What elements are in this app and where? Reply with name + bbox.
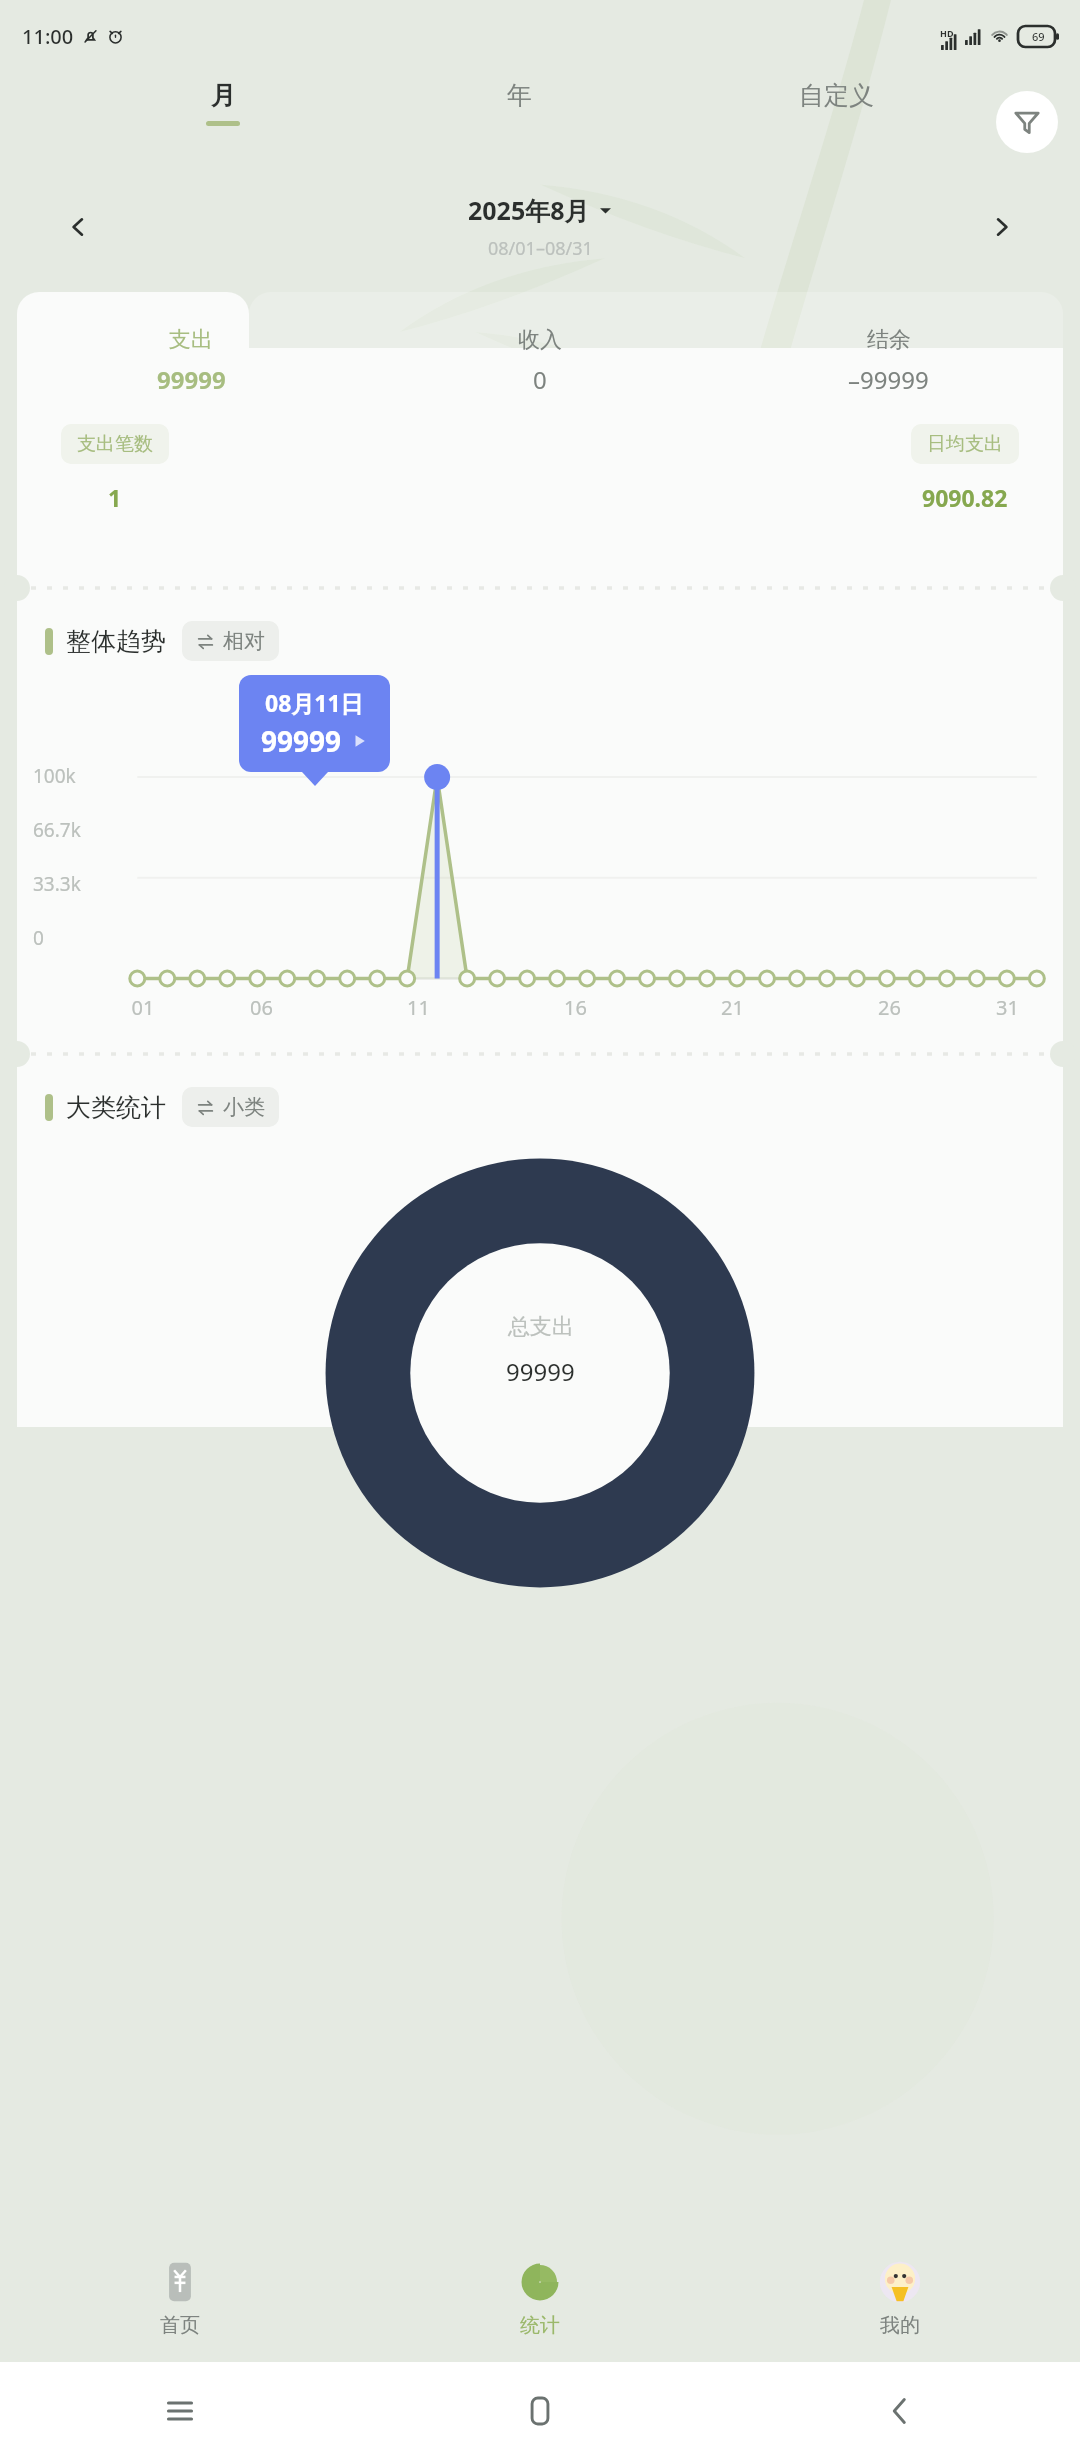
button[interactable]: 收入 <box>365 306 714 416</box>
button[interactable]: Filter <box>996 91 1058 153</box>
button[interactable]: Next <box>974 199 1030 255</box>
staticText: 99999 <box>506 1355 575 1388</box>
button[interactable]: 月 <box>200 72 246 134</box>
button[interactable]: 统计 <box>360 2255 720 2344</box>
staticText: 0 <box>533 363 547 396</box>
button[interactable]: 2025年8月 <box>468 193 612 261</box>
staticText: 大类统计 <box>66 1092 166 1123</box>
button[interactable]: 支出 <box>17 306 365 416</box>
staticText: 99999 <box>157 363 226 396</box>
staticText: 首页 <box>160 2313 200 2338</box>
staticText: 收入 <box>518 326 562 354</box>
button[interactable]: 首页 <box>0 2255 360 2344</box>
staticText: 相对 <box>223 628 265 654</box>
staticText: 结余 <box>867 326 911 354</box>
staticText: 1 <box>108 482 122 513</box>
staticText: 自定义 <box>799 80 874 111</box>
button[interactable]: 结余 <box>714 306 1063 416</box>
button[interactable]: 小类 <box>182 1087 279 1127</box>
staticText: 66.7k <box>33 817 81 843</box>
staticText: 年 <box>507 80 532 111</box>
staticText: HD <box>940 27 954 39</box>
staticText: 支出笔数 <box>77 432 153 456</box>
button[interactable]: Previous <box>50 199 106 255</box>
staticText: 16 <box>497 994 654 1021</box>
staticText: 日均支出 <box>927 432 1003 456</box>
staticText: 0 <box>33 925 44 951</box>
staticText: 支出 <box>169 326 213 354</box>
button[interactable]: 08月11日 <box>261 687 368 760</box>
button[interactable]: 我的 <box>720 2255 1080 2344</box>
staticText: 26 <box>811 994 968 1021</box>
staticText: 69 <box>1032 29 1045 44</box>
button[interactable]: 日均支出 <box>911 424 1019 513</box>
staticText: 31 <box>968 994 1047 1021</box>
staticText: 我的 <box>880 2313 920 2338</box>
button[interactable]: 相对 <box>182 621 279 661</box>
staticText: 统计 <box>520 2313 560 2338</box>
button[interactable]: 支出笔数 <box>61 424 169 513</box>
staticText: 9090.82 <box>922 482 1008 513</box>
staticText: 2025年8月 <box>468 193 590 227</box>
staticText: 11 <box>340 994 497 1021</box>
staticText: 月 <box>211 80 236 111</box>
staticText: 整体趋势 <box>66 626 166 657</box>
staticText: 100k <box>33 763 76 789</box>
button[interactable]: Home <box>360 2393 720 2429</box>
staticText: 08月11日 <box>265 687 364 718</box>
staticText: 总支出 <box>508 1313 574 1341</box>
staticText: 33.3k <box>33 871 81 897</box>
staticText: 11:00 <box>22 23 74 50</box>
staticText: 小类 <box>223 1094 265 1120</box>
button[interactable]: 年 <box>501 72 538 134</box>
staticText: 08/01–08/31 <box>488 236 593 261</box>
staticText: 21 <box>654 994 811 1021</box>
button[interactable]: Recents <box>0 2393 360 2429</box>
staticText: 99999 <box>261 722 342 760</box>
button[interactable]: 自定义 <box>793 72 880 134</box>
staticText: 06 <box>183 994 340 1021</box>
staticText: 01 <box>103 994 183 1021</box>
button[interactable]: Back <box>720 2393 1080 2429</box>
staticText: –99999 <box>848 363 929 396</box>
